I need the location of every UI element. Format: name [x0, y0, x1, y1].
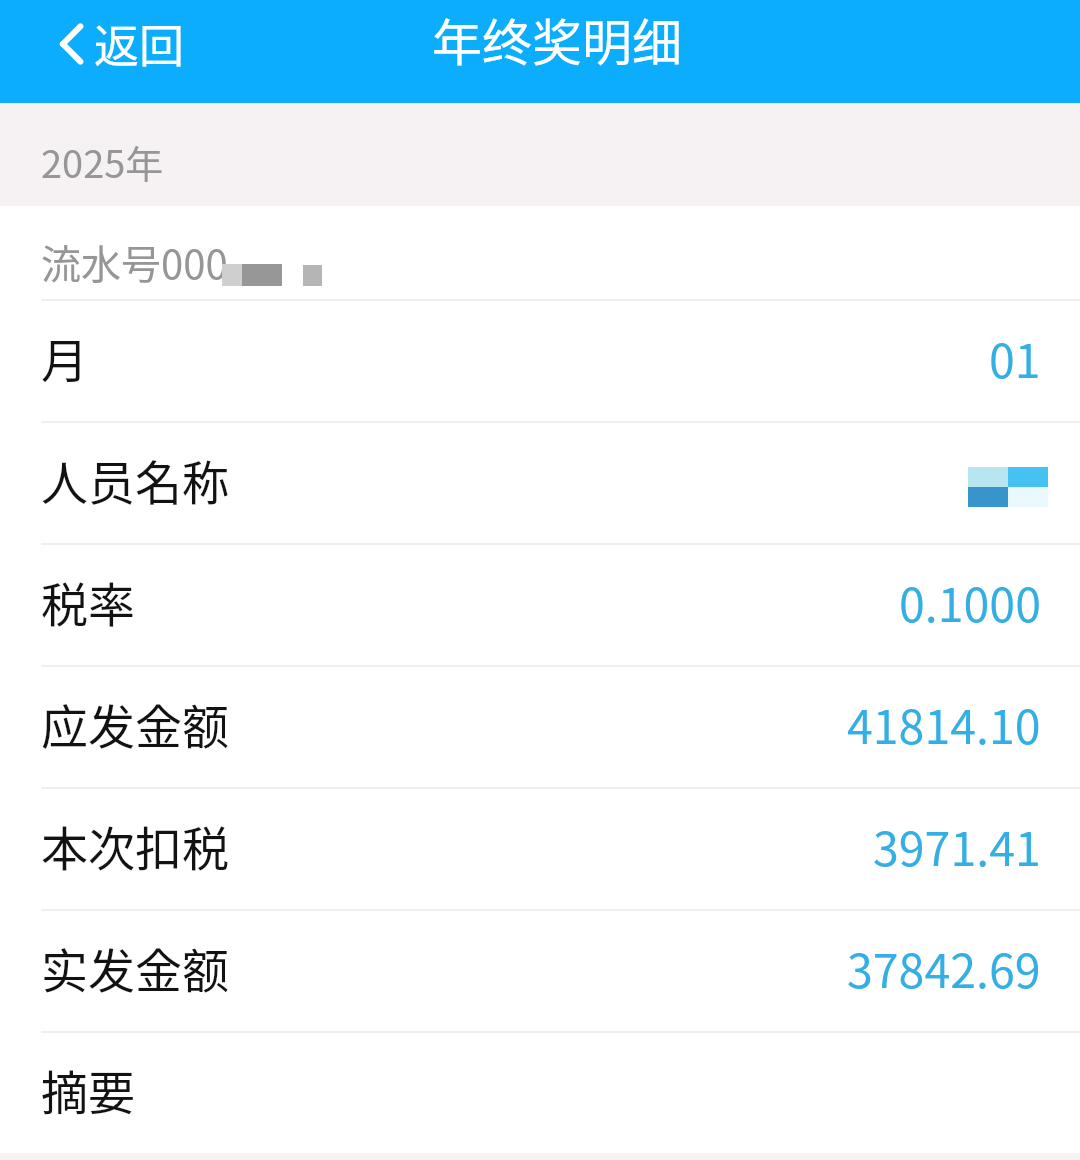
staticText: 2025年: [41, 134, 164, 189]
staticText: 实发金额: [41, 933, 229, 1001]
button[interactable]: 应发金额: [0, 667, 1080, 789]
button[interactable]: Back: [0, 0, 205, 90]
staticText: 本次扣税: [41, 811, 229, 879]
staticText: 37842.69: [847, 934, 1041, 1001]
staticText: 01: [989, 324, 1041, 391]
button[interactable]: 流水号000: [0, 206, 1080, 301]
staticText: 3971.41: [873, 812, 1041, 879]
staticText: 0.1000: [899, 568, 1041, 635]
staticText: 月: [41, 323, 88, 391]
staticText: 41814.10: [847, 690, 1041, 757]
staticText: 返回: [94, 11, 185, 76]
staticText: 摘要: [41, 1055, 135, 1123]
button[interactable]: 摘要: [0, 1033, 1080, 1153]
staticText: 应发金额: [41, 689, 229, 757]
staticText: 流水号000: [41, 233, 228, 291]
button[interactable]: 实发金额: [0, 911, 1080, 1033]
button[interactable]: 人员名称: [0, 423, 1080, 545]
button[interactable]: 月: [0, 301, 1080, 423]
staticText: 人员名称: [41, 445, 229, 513]
staticText: 年终奖明细: [432, 3, 682, 75]
staticText: 税率: [41, 567, 135, 635]
button[interactable]: 本次扣税: [0, 789, 1080, 911]
button[interactable]: 税率: [0, 545, 1080, 667]
